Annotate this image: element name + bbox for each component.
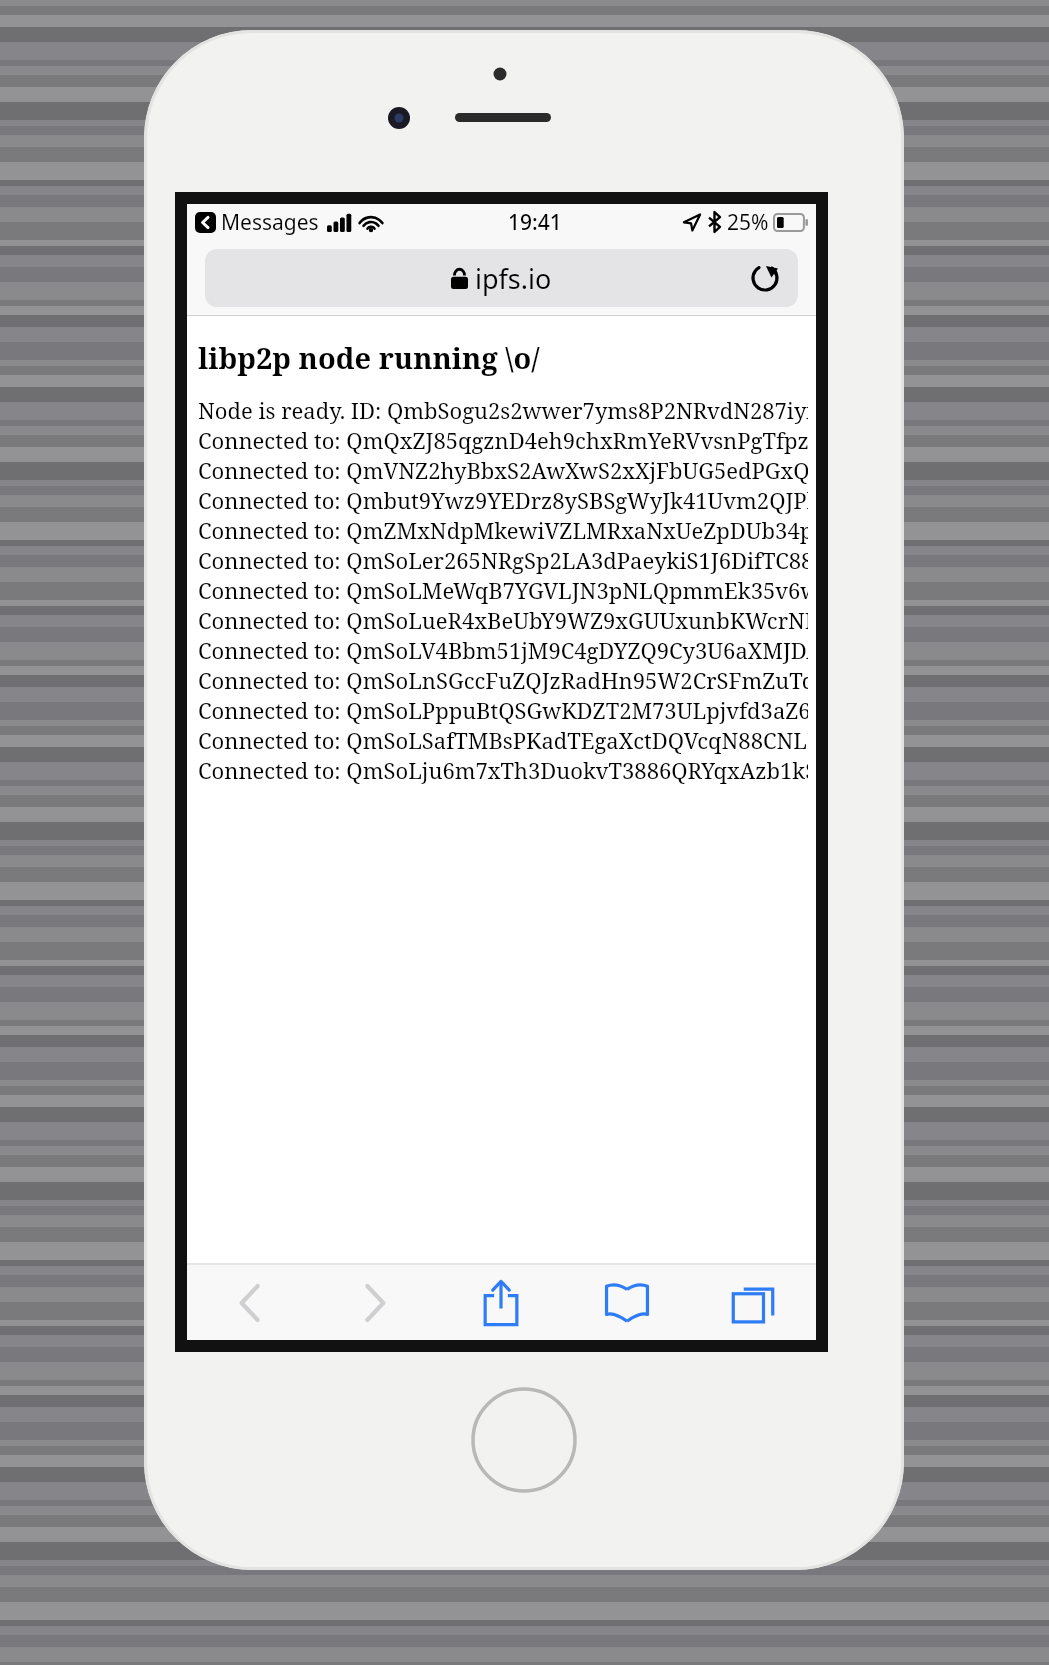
button[interactable]: Reload xyxy=(742,255,788,301)
staticText: Connected to: QmSoLSafTMBsPKadTEgaXctDQV… xyxy=(198,725,808,755)
staticText: Connected to: Qmbut9Ywz9YEDrz8ySBSgWyJk4… xyxy=(198,485,808,515)
button[interactable]: Home xyxy=(470,1386,578,1494)
staticText: ipfs.io xyxy=(475,260,552,297)
staticText: Connected to: QmQxZJ85qgznD4eh9chxRmYeRV… xyxy=(198,425,808,455)
staticText: Connected to: QmSoLMeWqB7YGVLJN3pNLQpmmE… xyxy=(198,575,808,605)
button[interactable]: Back xyxy=(187,1265,312,1340)
staticText: 19:41 xyxy=(508,208,562,237)
staticText: Connected to: QmZMxNdpMkewiVZLMRxaNxUeZp… xyxy=(198,515,808,545)
button[interactable]: Share xyxy=(438,1265,564,1340)
staticText: Connected to: QmSoLnSGccFuZQJzRadHn95W2C… xyxy=(198,665,808,695)
staticText: Connected to: QmSoLPppuBtQSGwKDZT2M73ULp… xyxy=(198,695,808,725)
staticText: Connected to: QmSoLer265NRgSp2LA3dPaeyki… xyxy=(198,545,808,575)
button[interactable]: Messages xyxy=(195,208,387,237)
staticText: Connected to: QmSoLueR4xBeUbY9WZ9xGUUxun… xyxy=(198,605,808,635)
staticText: Connected to: QmSoLV4Bbm51jM9C4gDYZQ9Cy3… xyxy=(198,635,808,665)
staticText: Messages xyxy=(221,208,319,237)
staticText: Connected to: QmVNZ2hyBbxS2AwXwS2xXjFbUG… xyxy=(198,455,808,485)
button[interactable]: Tabs xyxy=(690,1265,816,1340)
staticText: Connected to: QmSoLju6m7xTh3DuokvT3886QR… xyxy=(198,755,808,785)
staticText: libp2p node running \o/ xyxy=(198,338,540,377)
button[interactable]: Forward xyxy=(312,1265,438,1340)
staticText: Node is ready. ID: QmbSogu2s2wwer7yms8P2… xyxy=(198,395,808,425)
staticText: 25% xyxy=(727,208,769,237)
button[interactable]: ipfs.io xyxy=(205,249,798,307)
button[interactable]: Bookmarks xyxy=(564,1265,690,1340)
